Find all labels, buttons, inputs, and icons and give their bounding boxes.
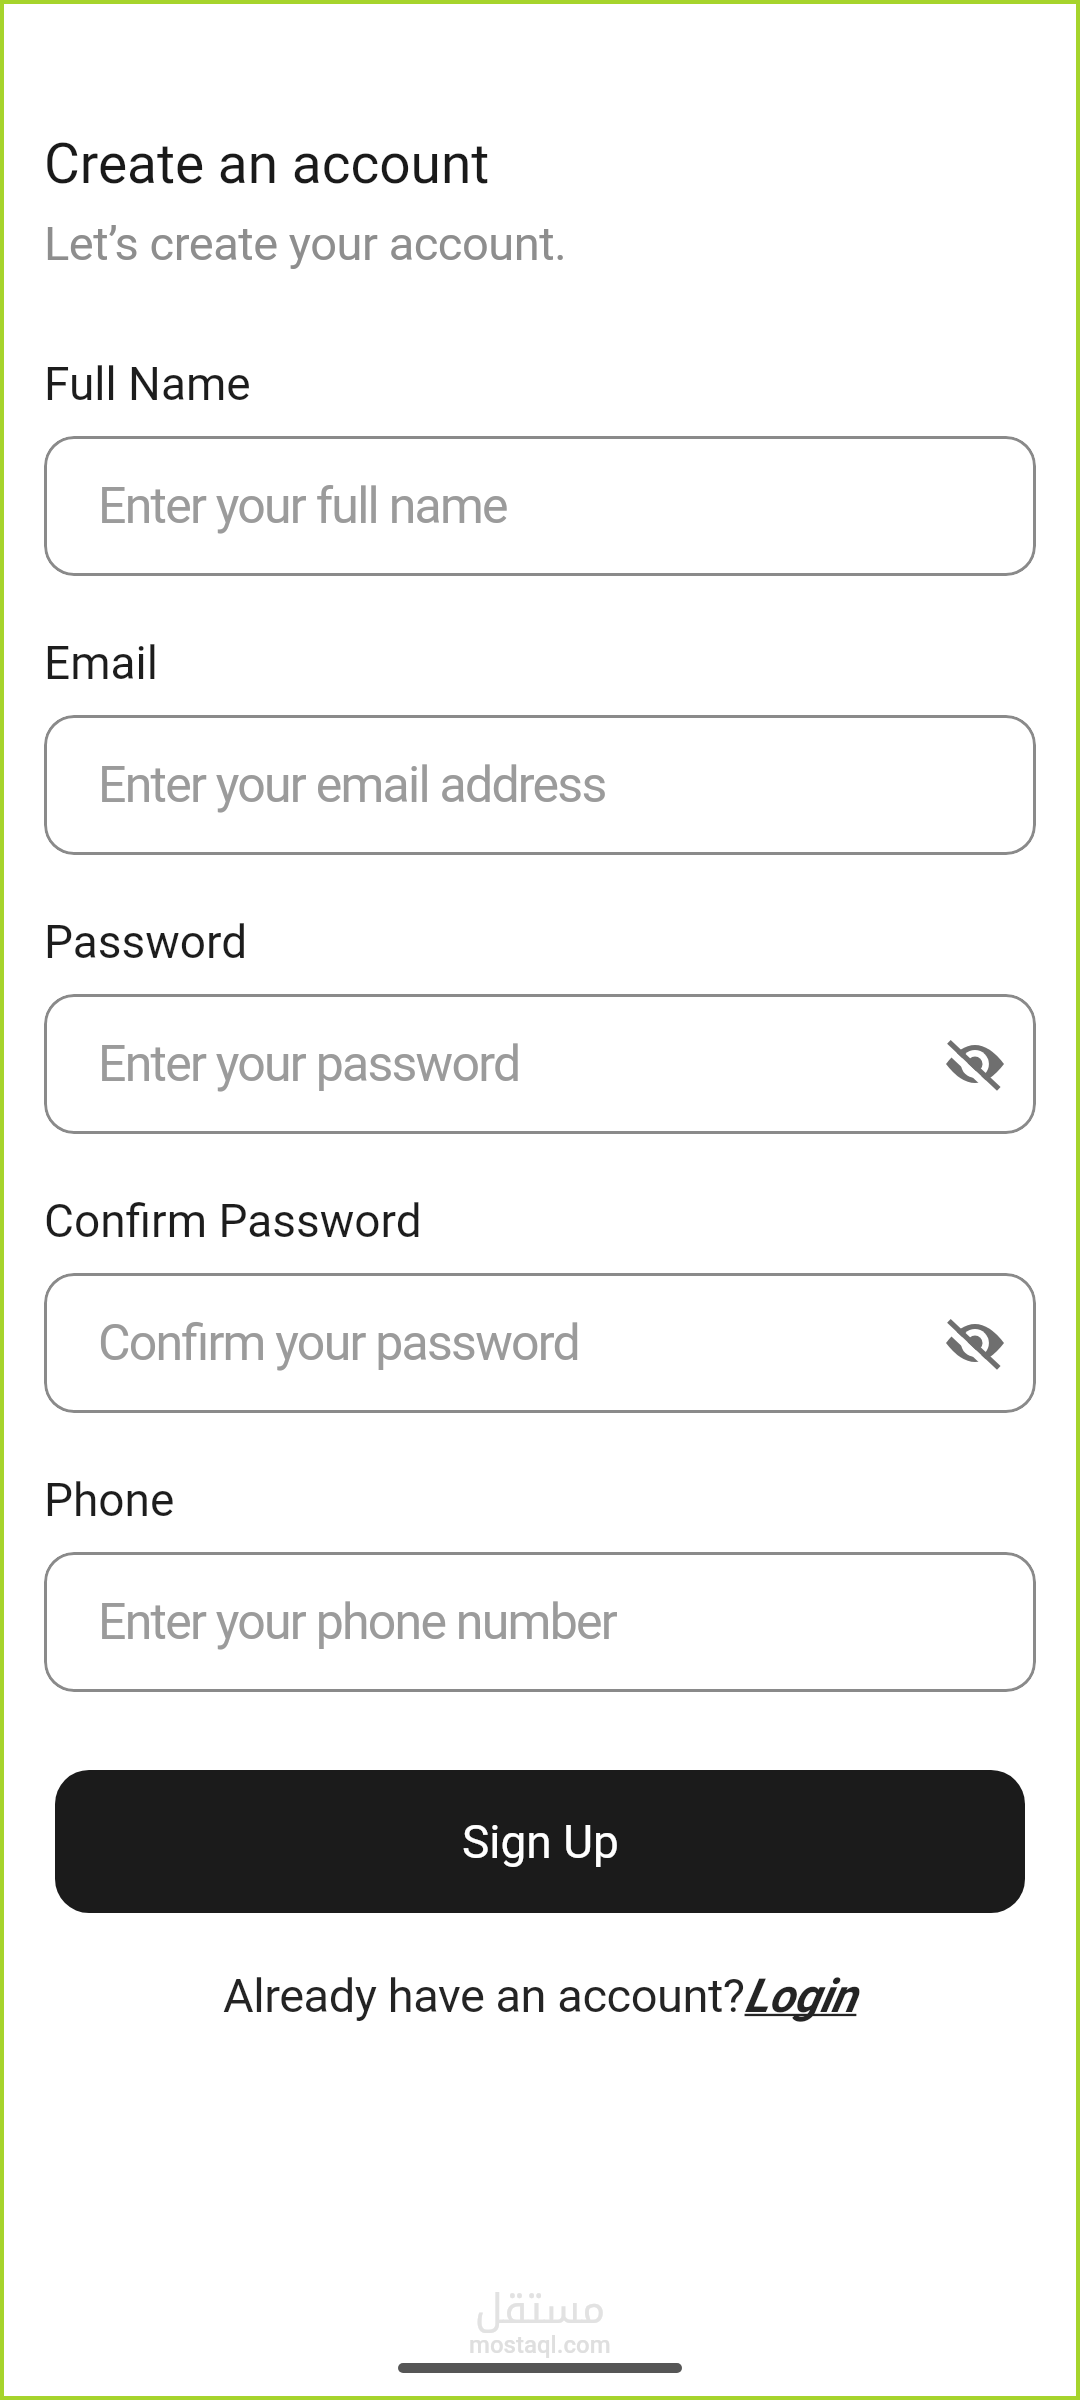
- button[interactable]: Sign Up: [55, 1770, 1025, 1913]
- button[interactable]: [946, 1035, 1004, 1093]
- staticText: Enter your phone number: [98, 1593, 616, 1652]
- staticText: Create an account: [44, 132, 490, 196]
- staticText: mostaql.com: [469, 2331, 611, 2359]
- staticText: Enter your password: [98, 1035, 520, 1094]
- staticText: Email: [44, 636, 158, 690]
- staticText: Phone: [44, 1473, 175, 1527]
- staticText: Sign Up: [462, 1815, 619, 1869]
- button[interactable]: Enter your full name: [44, 436, 1036, 576]
- button[interactable]: Enter your phone number: [44, 1552, 1036, 1692]
- staticText: Enter your full name: [98, 477, 507, 536]
- staticText: Let’s create your account.: [44, 216, 567, 271]
- staticText: Password: [44, 915, 248, 969]
- button[interactable]: Enter your email address: [44, 715, 1036, 855]
- button[interactable]: Enter your password: [44, 994, 1036, 1134]
- button[interactable]: Confirm your password: [44, 1273, 1036, 1413]
- button[interactable]: [946, 1314, 1004, 1372]
- button[interactable]: Already have an account?Login: [223, 1968, 857, 2023]
- staticText: Enter your email address: [98, 756, 606, 815]
- staticText: Confirm your password: [98, 1314, 579, 1373]
- staticText: مستقل: [475, 2270, 606, 2348]
- staticText: Confirm Password: [44, 1194, 422, 1248]
- staticText: Full Name: [44, 357, 251, 411]
